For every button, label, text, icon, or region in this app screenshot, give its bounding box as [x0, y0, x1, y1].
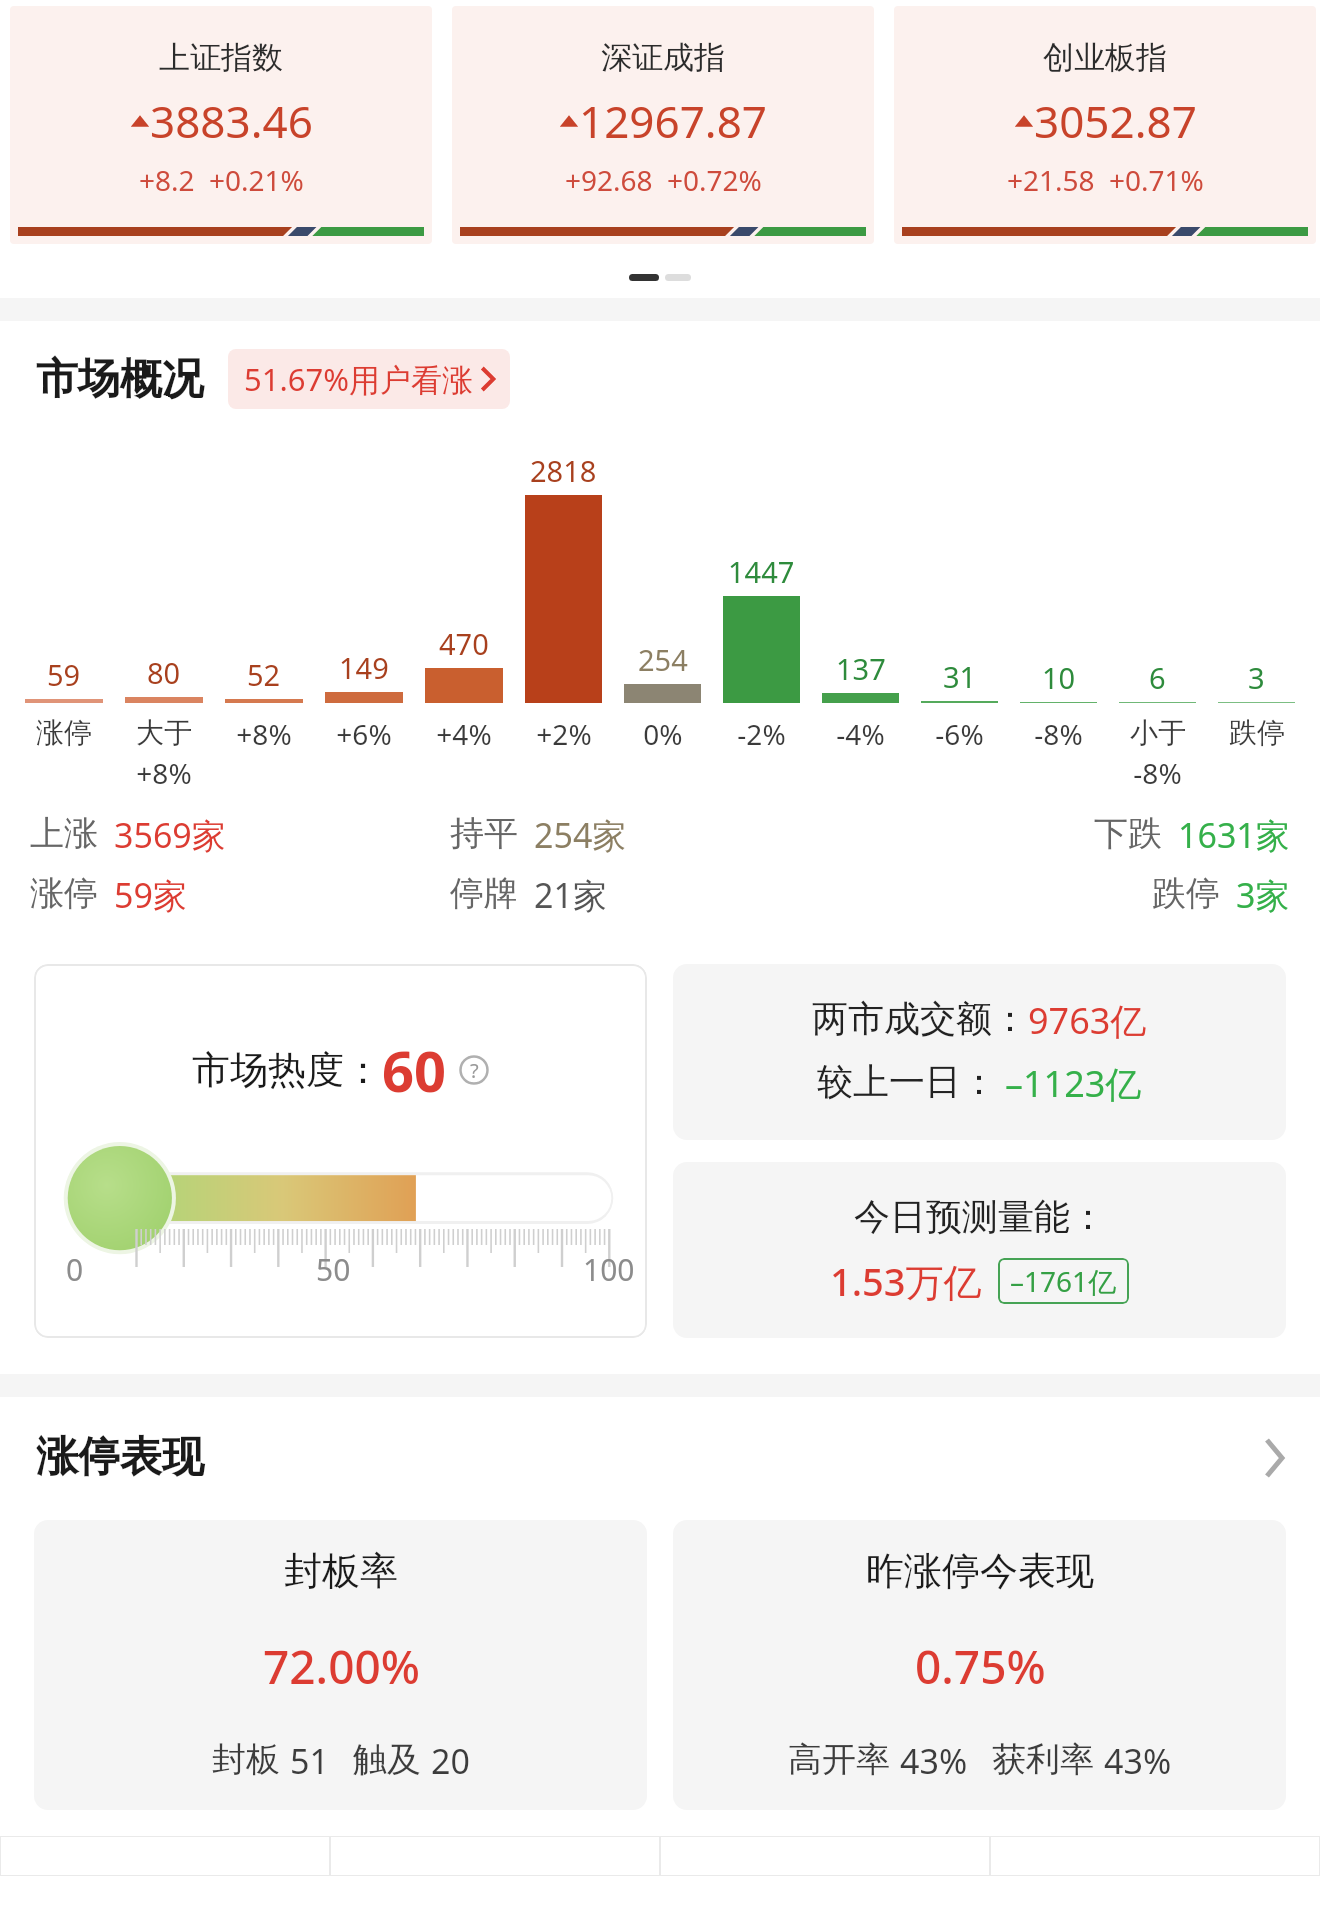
button[interactable]: 涨停表现 [0, 1431, 1320, 1484]
staticText: 停牌 [450, 872, 518, 915]
staticText: +8% [236, 715, 292, 753]
staticText: 10 [1042, 658, 1076, 697]
staticText: +4% [436, 715, 492, 753]
staticText: 0 [66, 1249, 84, 1290]
staticText: 0% [643, 715, 683, 753]
staticText: 创业板指 [1043, 38, 1167, 77]
button[interactable]: 说明 [459, 1055, 489, 1085]
staticText: +2% [536, 715, 592, 753]
staticText: 上涨 [30, 812, 98, 855]
staticText: ? [470, 1057, 479, 1084]
staticText: -8% [1133, 754, 1182, 792]
staticText: 小于 [1130, 715, 1186, 750]
staticText: 涨停 [36, 715, 92, 750]
staticText: +6% [336, 715, 392, 753]
staticText: 12967.87 [579, 91, 767, 151]
staticText: 深证成指 [601, 38, 725, 77]
button[interactable]: 两市成交额： [673, 964, 1286, 1140]
staticText: 51.67%用户看涨 [244, 358, 473, 400]
staticText: 50 [316, 1249, 351, 1290]
staticText: 254家 [534, 812, 627, 858]
staticText: 3家 [1236, 872, 1290, 918]
staticText: 3569家 [114, 812, 226, 858]
staticText: +8% [136, 754, 192, 792]
staticText: 触及 [353, 1738, 421, 1781]
button[interactable]: 市场热度： [34, 964, 647, 1338]
staticText: 今日预测量能： [854, 1194, 1106, 1239]
staticText: 100 [583, 1249, 635, 1290]
staticText: 0.75% [915, 1635, 1046, 1698]
staticText: 大于 [136, 715, 192, 750]
staticText: 31 [943, 657, 977, 696]
button[interactable]: 深证成指 [452, 6, 874, 244]
staticText: 3883.46 [150, 91, 313, 151]
other: 查看更多 [1264, 1440, 1284, 1476]
staticText: 60 [382, 1032, 447, 1108]
staticText: 3052.87 [1034, 91, 1197, 151]
staticText: 21家 [534, 872, 607, 918]
staticText: 254 [638, 640, 688, 679]
staticText: –1761亿 [1010, 1262, 1117, 1300]
staticText: 涨停 [30, 872, 98, 915]
staticText: -8% [1034, 715, 1083, 753]
staticText: 上证指数 [159, 38, 283, 77]
staticText: 51 [290, 1738, 329, 1784]
staticText: 涨停表现 [36, 1431, 204, 1484]
staticText: 6 [1149, 658, 1166, 697]
button[interactable]: 51.67%用户看涨 [228, 349, 510, 409]
button[interactable]: 上证指数 [10, 6, 432, 244]
staticText: 149 [339, 648, 389, 687]
staticText: +0.72% [667, 161, 762, 199]
staticText: 较上一日： [817, 1059, 997, 1104]
staticText: 137 [836, 649, 886, 688]
staticText: 3 [1248, 658, 1265, 697]
staticText: 跌停 [1229, 715, 1285, 750]
staticText: 高开率 [788, 1738, 890, 1781]
staticText: –1123亿 [1005, 1059, 1142, 1108]
staticText: 封板率 [284, 1547, 398, 1595]
staticText: 昨涨停今表现 [866, 1547, 1094, 1595]
button[interactable]: 创业板指 [894, 6, 1316, 244]
staticText: +8.2 [139, 161, 195, 199]
staticText: 20 [431, 1738, 470, 1784]
staticText: -6% [935, 715, 984, 753]
staticText: +0.21% [209, 161, 304, 199]
staticText: 获利率 [992, 1738, 1094, 1781]
staticText: 下跌 [1094, 812, 1162, 855]
staticText: 52 [247, 655, 281, 694]
button[interactable]: 昨涨停今表现 [673, 1520, 1286, 1810]
staticText: 72.00% [263, 1635, 420, 1698]
staticText: 470 [439, 624, 489, 663]
staticText: 封板 [212, 1738, 280, 1781]
staticText: 市场概况 [36, 353, 204, 406]
staticText: 43% [900, 1738, 968, 1784]
staticText: 跌停 [1152, 872, 1220, 915]
staticText: 1447 [728, 552, 795, 591]
staticText: -2% [737, 715, 786, 753]
staticText: +92.68 [565, 161, 653, 199]
staticText: 9763亿 [1028, 996, 1147, 1045]
button[interactable]: 今日预测量能： [673, 1162, 1286, 1338]
staticText: 1.53万亿 [830, 1255, 982, 1307]
staticText: 80 [147, 653, 181, 692]
staticText: 59 [47, 655, 81, 694]
staticText: 持平 [450, 812, 518, 855]
staticText: +0.71% [1109, 161, 1204, 199]
staticText: 43% [1104, 1738, 1172, 1784]
staticText: 市场热度： [192, 1046, 382, 1094]
staticText: 59家 [114, 872, 187, 918]
staticText: 2818 [530, 451, 597, 490]
staticText: 1631家 [1178, 812, 1290, 858]
staticText: 两市成交额： [812, 996, 1028, 1041]
staticText: -4% [836, 715, 885, 753]
button[interactable]: 封板率 [34, 1520, 647, 1810]
staticText: +21.58 [1007, 161, 1095, 199]
